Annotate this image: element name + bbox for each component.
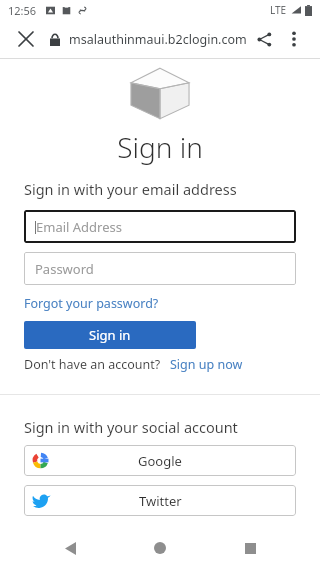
staticText: Password xyxy=(35,260,94,278)
button[interactable]: Back xyxy=(50,528,90,568)
staticText: Don't have an account? xyxy=(24,356,161,373)
staticText: msalauthinmaui.b2clogin.com xyxy=(69,31,247,48)
button[interactable]: Forgot your password? xyxy=(24,295,159,312)
staticText: Google xyxy=(138,452,182,470)
staticText: 12:56 xyxy=(8,3,37,18)
staticText: Sign in with your email address xyxy=(24,179,237,199)
button[interactable]: Twitter xyxy=(24,485,296,516)
staticText: LTE xyxy=(270,3,287,17)
button[interactable]: Sign in xyxy=(24,321,196,349)
staticText: Sign in with your social account xyxy=(24,417,238,437)
button[interactable]: Google xyxy=(24,445,296,476)
staticText: Sign in xyxy=(89,326,131,344)
button[interactable]: Email Address xyxy=(24,210,296,243)
button[interactable]: Home xyxy=(140,528,180,568)
button[interactable]: Share xyxy=(251,26,277,52)
staticText: Sign in xyxy=(0,128,320,166)
button[interactable]: Recent apps xyxy=(230,528,270,568)
button[interactable]: Password xyxy=(24,252,296,285)
button[interactable]: More options xyxy=(281,26,307,52)
staticText: Email Address xyxy=(36,218,122,236)
button[interactable]: Close xyxy=(13,26,39,52)
staticText: Twitter xyxy=(139,492,182,510)
button[interactable]: Sign up now xyxy=(170,356,243,373)
